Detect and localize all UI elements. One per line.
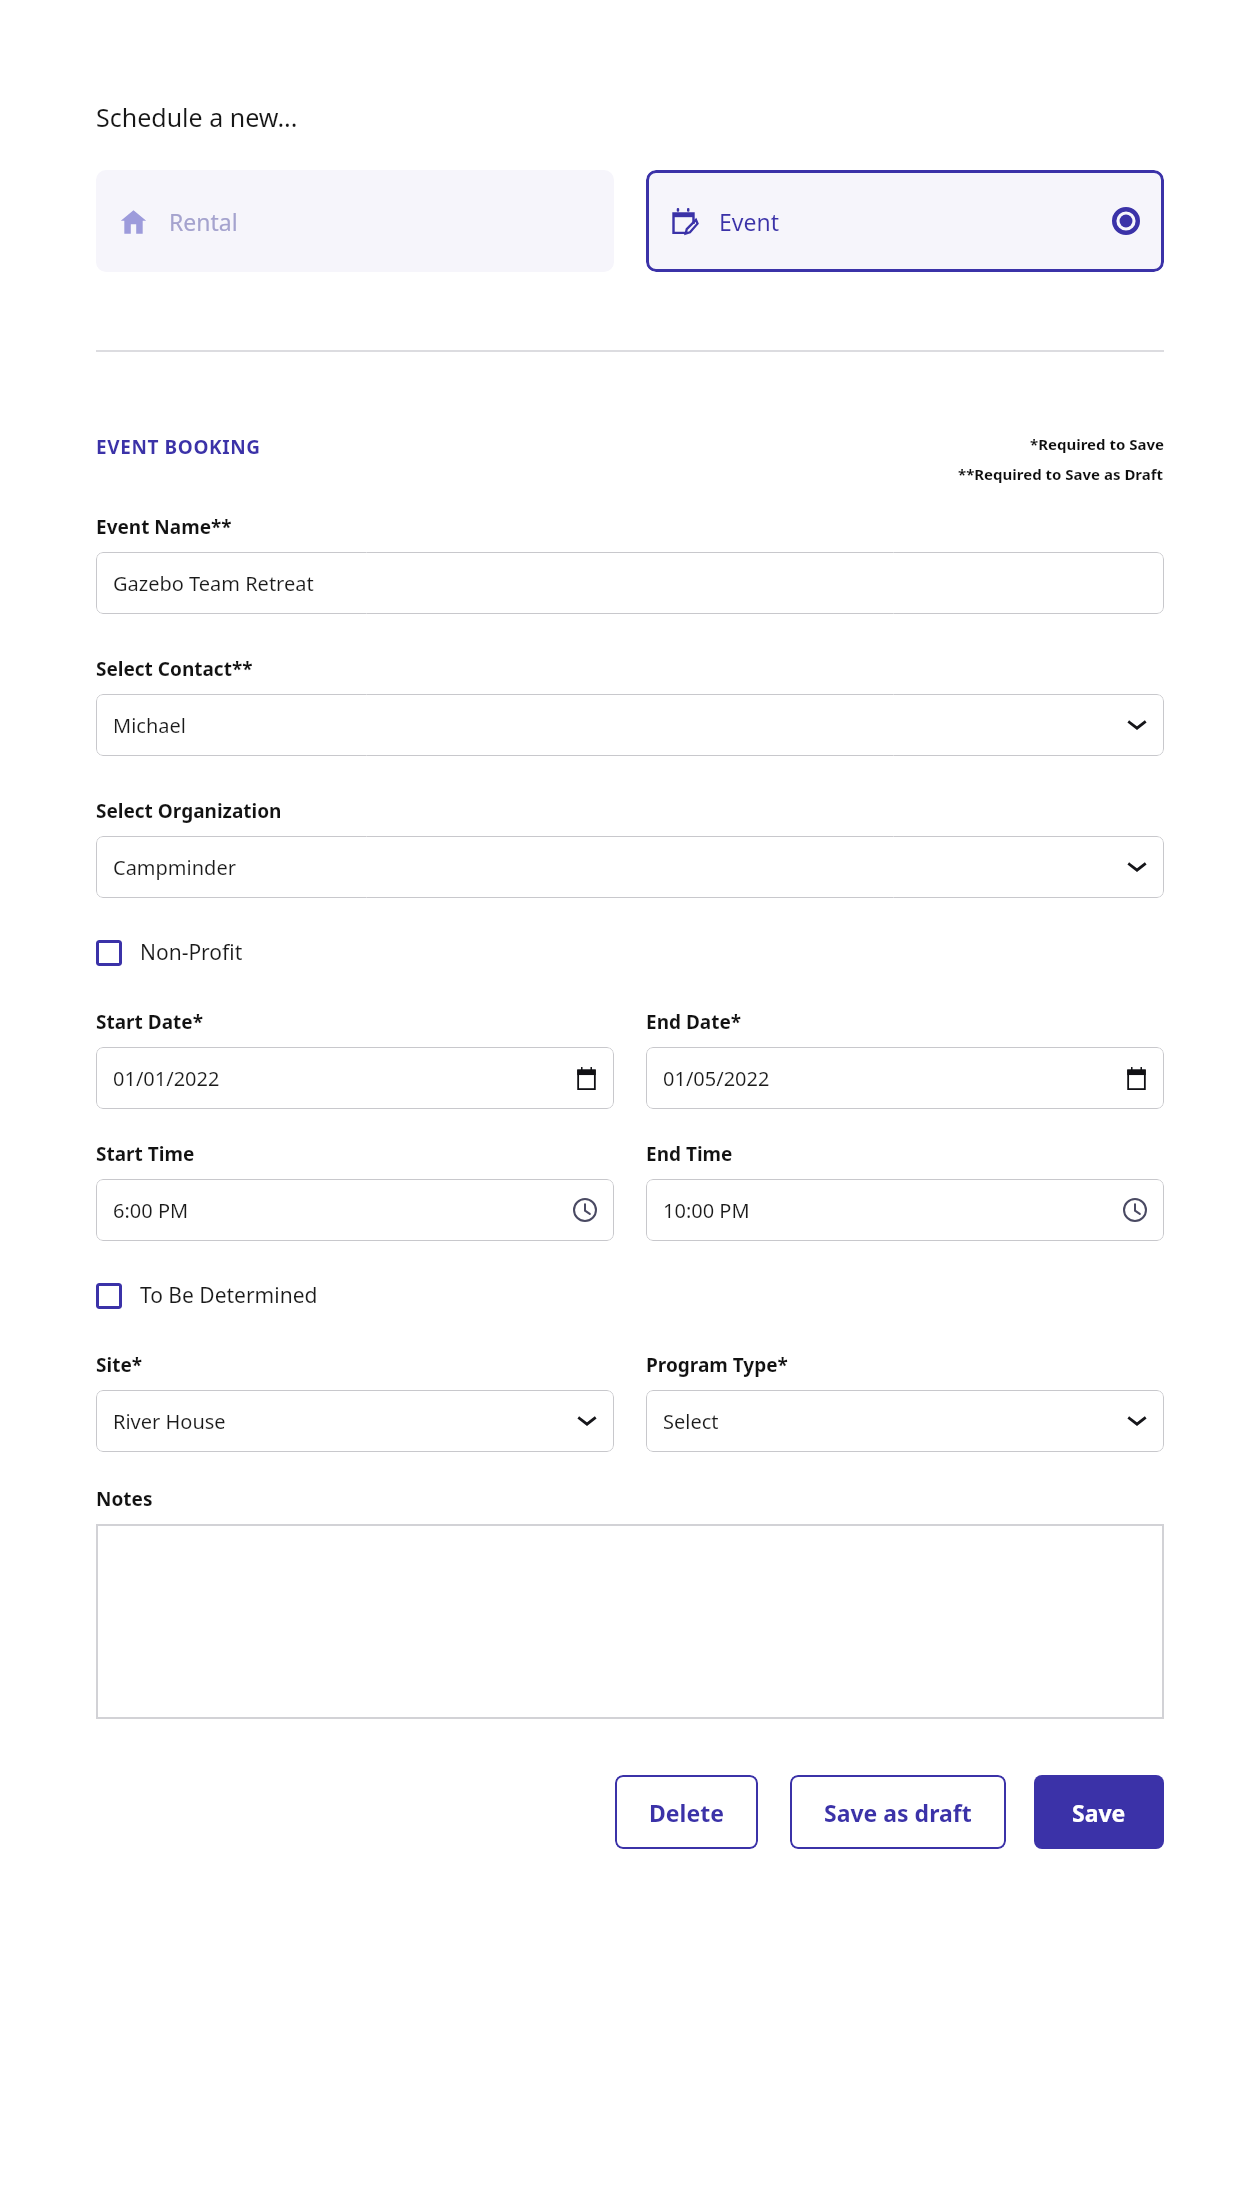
staticText: **Required to Save as Draft — [958, 464, 1164, 484]
button[interactable]: Save — [1034, 1775, 1164, 1849]
staticText: Michael — [113, 712, 186, 739]
staticText: Notes — [96, 1486, 153, 1512]
staticText: Event — [719, 206, 779, 237]
staticText: Save — [1072, 1797, 1126, 1828]
button[interactable]: Select — [646, 1390, 1164, 1452]
staticText: Rental — [169, 206, 238, 237]
other: Pick date — [576, 1067, 597, 1090]
staticText: End Time — [646, 1141, 733, 1167]
other: Pick time — [1123, 1198, 1147, 1222]
staticText: 10:00 PM — [663, 1197, 750, 1224]
button[interactable]: Rental — [96, 170, 614, 272]
staticText: To Be Determined — [140, 1281, 318, 1310]
staticText: Schedule a new... — [96, 100, 298, 134]
button[interactable]: Event — [646, 170, 1164, 272]
staticText: Start Date* — [96, 1009, 203, 1035]
button[interactable]: Michael — [96, 694, 1164, 756]
staticText: Save as draft — [824, 1797, 972, 1828]
staticText: End Date* — [646, 1009, 742, 1035]
staticText: 01/01/2022 — [113, 1065, 220, 1092]
staticText: Delete — [649, 1797, 724, 1828]
button[interactable]: To Be Determined — [96, 1277, 318, 1314]
staticText: Event Name** — [96, 514, 232, 540]
staticText: 01/05/2022 — [663, 1065, 770, 1092]
staticText: Select — [663, 1408, 719, 1435]
button[interactable]: 6:00 PM — [96, 1179, 614, 1241]
staticText: Program Type* — [646, 1352, 788, 1378]
other: Pick time — [573, 1198, 597, 1222]
button[interactable] — [96, 1524, 1164, 1719]
button[interactable]: 01/01/2022 — [96, 1047, 614, 1109]
button[interactable]: Non-Profit — [96, 934, 243, 971]
button[interactable]: River House — [96, 1390, 614, 1452]
staticText: Campminder — [113, 854, 236, 881]
button[interactable]: Save as draft — [790, 1775, 1006, 1849]
staticText: Site* — [96, 1352, 143, 1378]
staticText: Select Contact** — [96, 656, 253, 682]
staticText: Non-Profit — [140, 938, 243, 967]
staticText: EVENT BOOKING — [96, 434, 261, 460]
other: Pick date — [1126, 1067, 1147, 1090]
button[interactable]: 10:00 PM — [646, 1179, 1164, 1241]
staticText: River House — [113, 1408, 226, 1435]
button[interactable]: Gazebo Team Retreat — [96, 552, 1164, 614]
button[interactable]: Delete — [615, 1775, 758, 1849]
staticText: Start Time — [96, 1141, 195, 1167]
staticText: Select Organization — [96, 798, 282, 824]
button[interactable]: Campminder — [96, 836, 1164, 898]
staticText: 6:00 PM — [113, 1197, 189, 1224]
staticText: Gazebo Team Retreat — [113, 570, 314, 597]
button[interactable]: 01/05/2022 — [646, 1047, 1164, 1109]
staticText: *Required to Save — [1030, 434, 1164, 454]
